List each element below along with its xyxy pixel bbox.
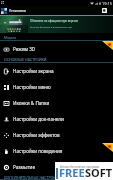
staticText: ДОПОЛНИТЕЛЬНЫЕ НАСТРОЙКИ: [4, 175, 61, 179]
button[interactable]: Настройки меню: [0, 79, 113, 95]
button[interactable]: Обновить на официальную версию: [0, 16, 113, 33]
staticText: больше функций и интересных тем: [30, 25, 72, 28]
button[interactable]: Иконки & Папки: [0, 95, 113, 111]
staticText: Иконки & Папки: [13, 100, 50, 106]
staticText: FREE: [59, 165, 85, 180]
staticText: SOFT: [85, 165, 113, 180]
button[interactable]: Настройки эффектов: [0, 127, 113, 143]
button[interactable]: Настройки поведения: [0, 143, 113, 159]
staticText: Настройки экрана: [13, 68, 54, 74]
button[interactable]: Режим 3D: [0, 41, 113, 57]
button[interactable]: Размытие: [0, 159, 113, 175]
button[interactable]: Настройки док-панели: [0, 111, 113, 127]
button[interactable]: More options: [102, 8, 107, 13]
staticText: Размытие: [13, 164, 35, 170]
staticText: Модель: [4, 36, 17, 40]
staticText: Каталог бесплатных программ: [60, 165, 99, 169]
staticText: Установки: [9, 8, 26, 13]
staticText: Обновить на официальную версию: [30, 19, 78, 23]
staticText: Настройки меню: [13, 84, 51, 90]
staticText: Настройки док-панели: [13, 116, 64, 122]
button[interactable]: Настройки экрана: [0, 63, 113, 79]
staticText: Настройки поведения: [13, 148, 63, 154]
staticText: 19:15: [102, 1, 112, 6]
staticText: ОСНОВНЫЕ НАСТРОЙКИ: [4, 57, 47, 62]
staticText: Режим 3D: [13, 46, 36, 52]
staticText: Настройки эффектов: [13, 132, 60, 138]
